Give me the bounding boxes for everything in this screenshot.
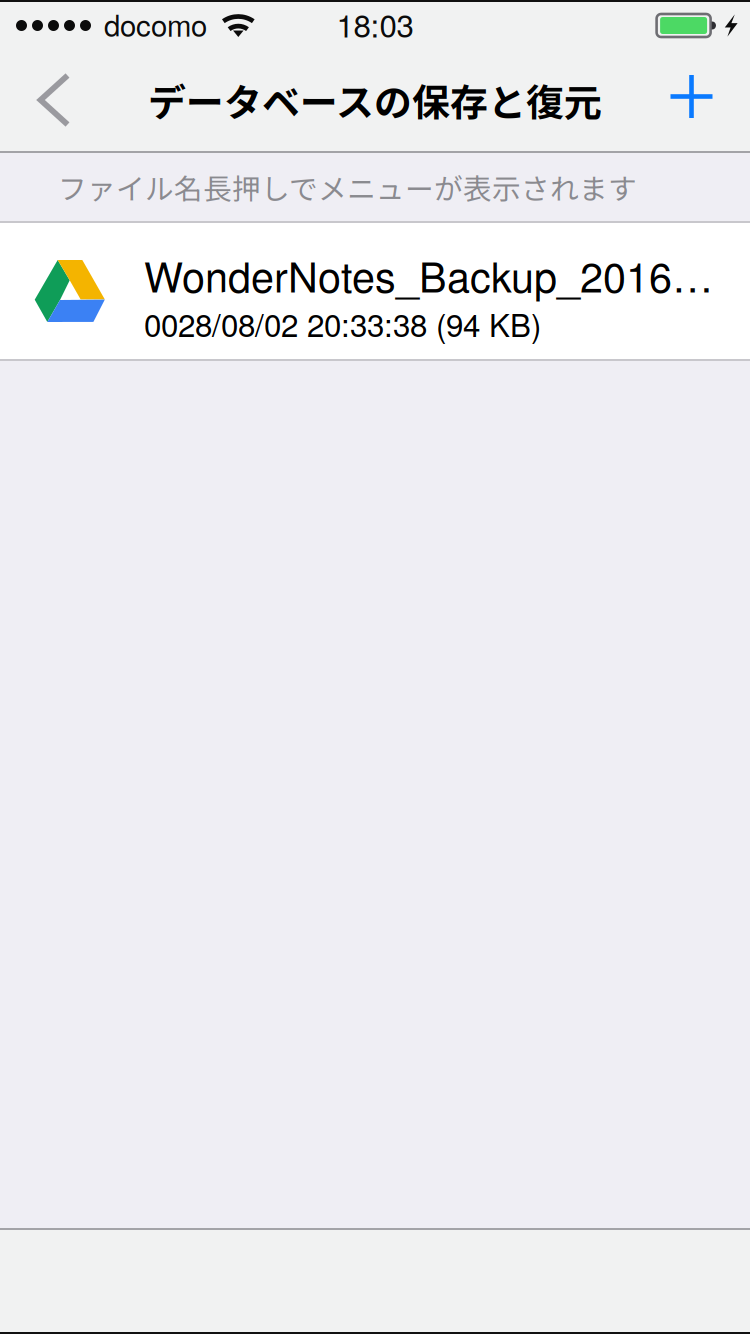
staticText: docomo: [104, 3, 207, 45]
staticText: 0028/08/02 20:33:38 (94 KB): [144, 301, 541, 346]
button[interactable]: WonderNotes_Backup_2016…: [0, 223, 750, 359]
staticText: 18:03: [336, 2, 413, 46]
button[interactable]: Back: [0, 49, 108, 151]
button[interactable]: Add new backup: [633, 49, 750, 151]
staticText: ファイル名長押しでメニューが表示されます: [58, 166, 637, 208]
staticText: WonderNotes_Backup_2016…: [144, 245, 713, 304]
staticText: データベースの保存と復元: [148, 73, 602, 127]
